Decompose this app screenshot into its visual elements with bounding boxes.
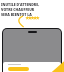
staticText: VOTRE CHAUFFEUR [1,7,35,12]
button[interactable] [8,67,29,71]
staticText: SERA BIENTOT LA [1,12,32,17]
staticText: INUTILE D'ATTENDRE, [1,2,40,7]
